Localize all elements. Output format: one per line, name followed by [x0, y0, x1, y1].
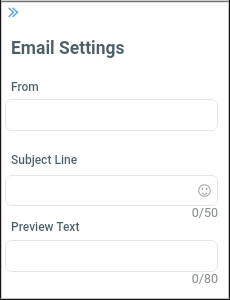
staticText: Subject Line: [11, 153, 78, 167]
staticText: Preview Text: [11, 220, 80, 234]
button[interactable]: Insert emoji: [5, 175, 218, 206]
staticText: From: [11, 80, 39, 94]
button[interactable]: [5, 240, 218, 272]
button[interactable]: Expand panel: [3, 0, 23, 20]
staticText: 0/50: [0, 205, 218, 220]
button[interactable]: Insert emoji: [196, 183, 212, 199]
staticText: 0/80: [0, 271, 218, 286]
button[interactable]: [5, 99, 218, 131]
staticText: Email Settings: [11, 38, 125, 59]
